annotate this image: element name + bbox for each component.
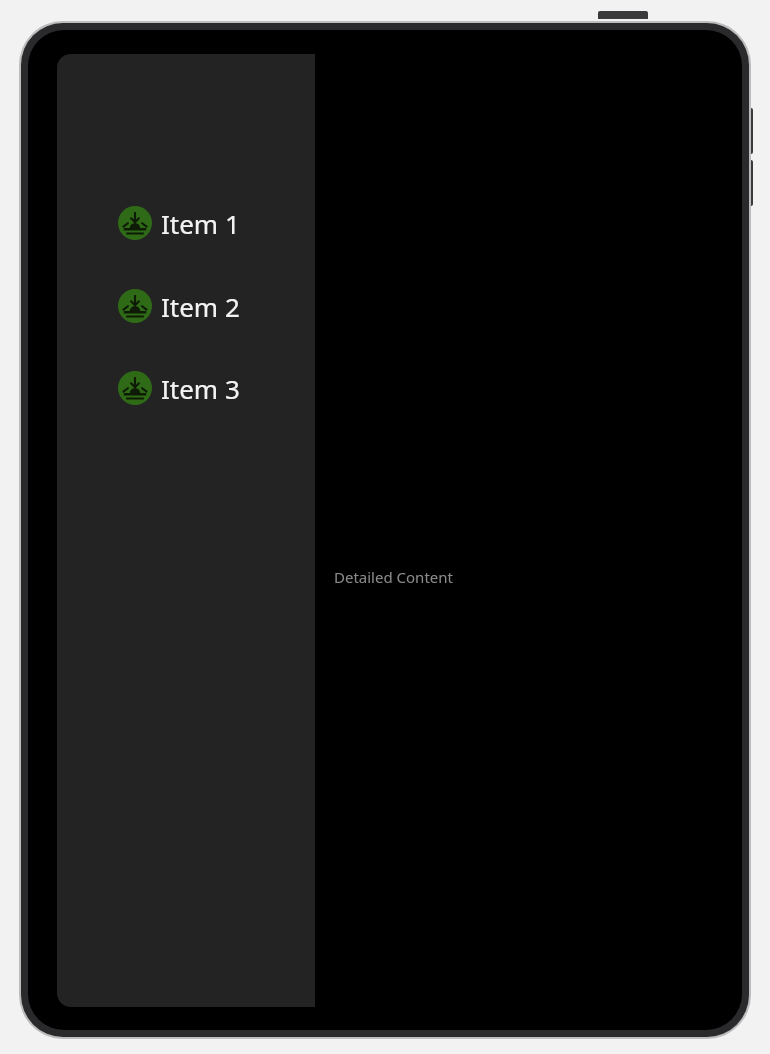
other: Sunset <box>118 371 152 405</box>
other: Sunset <box>118 289 152 323</box>
button[interactable]: Sunset <box>109 206 309 240</box>
button[interactable]: Sunset <box>109 289 309 323</box>
staticText: Item 1 <box>161 206 240 240</box>
staticText: Item 2 <box>161 289 240 323</box>
staticText: Detailed Content <box>334 567 453 587</box>
staticText: Item 3 <box>161 371 240 405</box>
button[interactable]: Sunset <box>109 371 309 405</box>
other: Sunset <box>118 206 152 240</box>
